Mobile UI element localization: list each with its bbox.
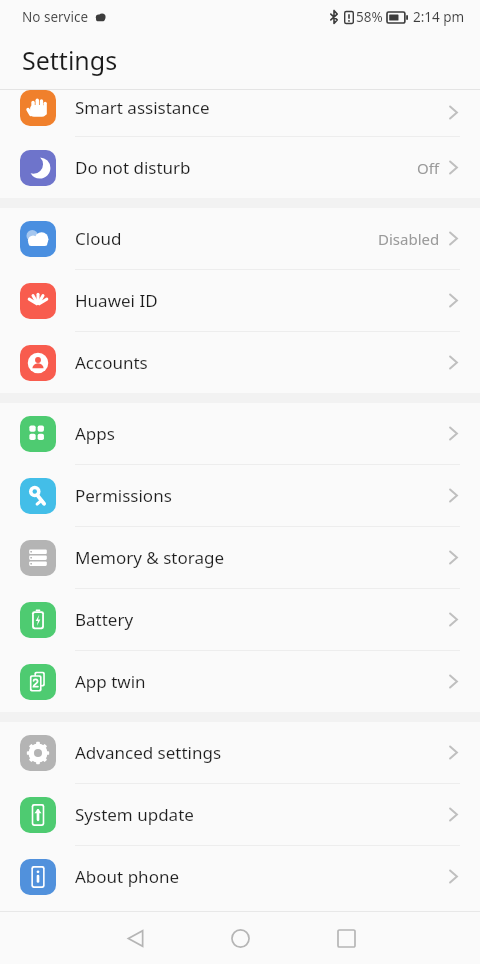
staticText: About phone xyxy=(75,865,449,888)
button[interactable]: Battery xyxy=(0,589,480,650)
staticText: Permissions xyxy=(75,484,449,507)
staticText: Advanced settings xyxy=(75,741,449,764)
button[interactable]: App twin xyxy=(0,651,480,712)
staticText: Do not disturb xyxy=(75,156,417,179)
button[interactable]: Back xyxy=(105,912,165,964)
staticText: Smart assistance xyxy=(75,96,449,119)
button[interactable]: About phone xyxy=(0,846,480,907)
staticText: No service xyxy=(22,8,89,26)
button[interactable]: Permissions xyxy=(0,465,480,526)
staticText: Huawei ID xyxy=(75,289,449,312)
staticText: Battery xyxy=(75,608,449,631)
button[interactable]: System update xyxy=(0,784,480,845)
staticText: Disabled xyxy=(378,229,440,249)
button[interactable]: Home xyxy=(210,912,270,964)
button[interactable]: Apps xyxy=(0,403,480,464)
staticText: Off xyxy=(417,158,440,178)
staticText: System update xyxy=(75,803,449,826)
button[interactable]: Accounts xyxy=(0,332,480,393)
staticText: Accounts xyxy=(75,351,449,374)
button[interactable]: Cloud xyxy=(0,208,480,269)
staticText: App twin xyxy=(75,670,449,693)
button[interactable]: Advanced settings xyxy=(0,722,480,783)
button[interactable]: Smart assistance xyxy=(0,90,480,136)
button[interactable]: Memory & storage xyxy=(0,527,480,588)
staticText: 58% xyxy=(356,8,383,26)
button[interactable]: Recents xyxy=(316,912,376,964)
staticText: 2:14 pm xyxy=(413,8,465,26)
staticText: Apps xyxy=(75,422,449,445)
staticText: Cloud xyxy=(75,227,378,250)
staticText: Settings xyxy=(22,43,118,77)
button[interactable]: Huawei ID xyxy=(0,270,480,331)
button[interactable]: Do not disturb xyxy=(0,137,480,198)
staticText: Memory & storage xyxy=(75,546,449,569)
